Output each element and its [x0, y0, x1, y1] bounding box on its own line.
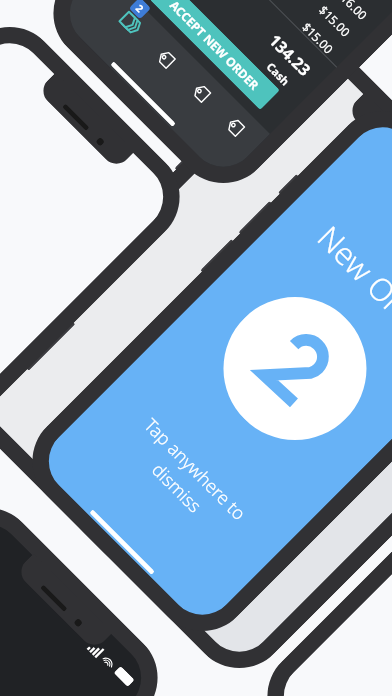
button[interactable]: Orders [112, 5, 152, 44]
staticText: $16.00 [333, 0, 371, 23]
button[interactable]: Tag [222, 114, 249, 140]
button[interactable]: New Order [35, 113, 392, 629]
button[interactable]: Tag [188, 80, 215, 106]
staticText: 134.23 [264, 29, 316, 81]
staticText: $15.00 [316, 2, 354, 40]
staticText: $15.00 [299, 19, 337, 57]
staticText: 2 [133, 1, 147, 15]
staticText: dismiss [146, 458, 207, 518]
button[interactable]: ACCEPT NEW ORDER [150, 0, 280, 110]
staticText: ACCEPT NEW ORDER [167, 0, 263, 93]
button[interactable]: Tag [153, 46, 179, 73]
staticText: New Order [309, 216, 392, 355]
staticText: Cash [264, 59, 293, 89]
staticText: Tap anywhere to [139, 413, 251, 525]
